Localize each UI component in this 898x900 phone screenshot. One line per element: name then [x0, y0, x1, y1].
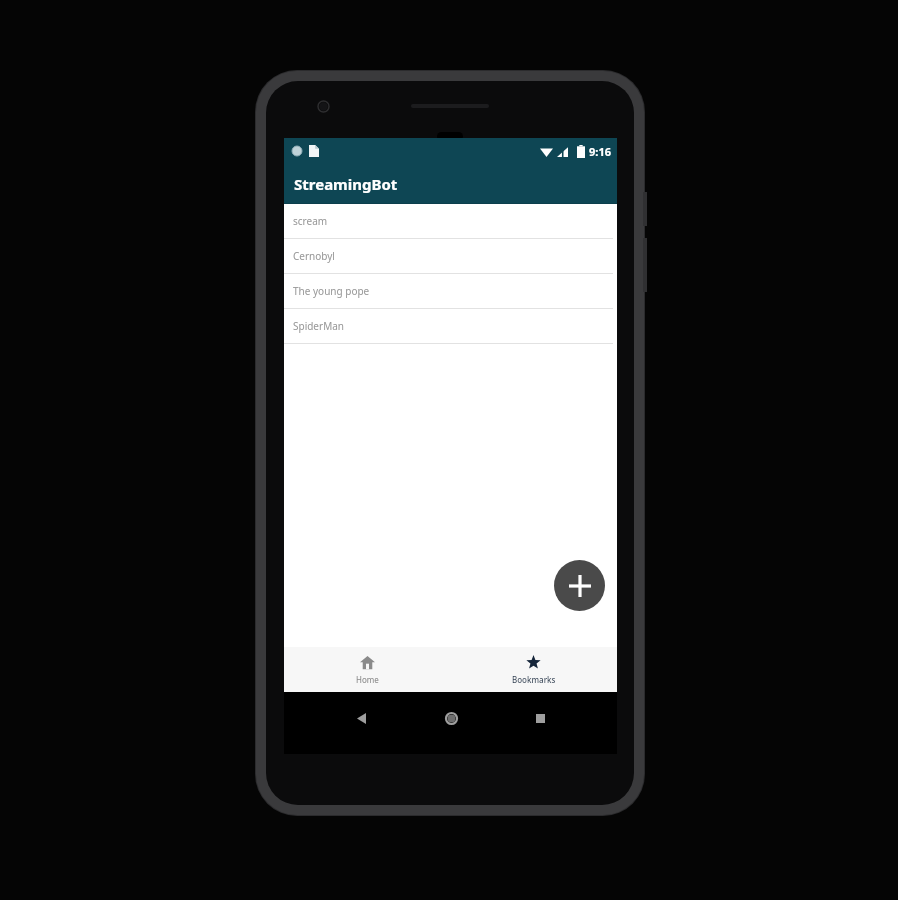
button[interactable]: Home	[438, 705, 464, 731]
button[interactable]: Add	[554, 560, 605, 611]
button[interactable]: SpiderMan	[284, 309, 617, 344]
button[interactable]: Home	[284, 647, 450, 692]
staticText: SpiderMan	[293, 319, 344, 333]
button[interactable]: Back	[348, 705, 374, 731]
button[interactable]: Cernobyl	[284, 239, 617, 274]
staticText: StreamingBot	[294, 174, 398, 194]
staticText: The young pope	[293, 284, 370, 298]
staticText: Home	[356, 674, 379, 685]
button[interactable]: The young pope	[284, 274, 617, 309]
button[interactable]: Bookmarks	[450, 647, 617, 692]
staticText: Bookmarks	[512, 674, 556, 685]
staticText: scream	[293, 214, 328, 228]
staticText: 9:16	[589, 144, 611, 159]
staticText: Cernobyl	[293, 249, 335, 263]
button[interactable]: scream	[284, 204, 617, 239]
button[interactable]: Recent apps	[527, 705, 553, 731]
